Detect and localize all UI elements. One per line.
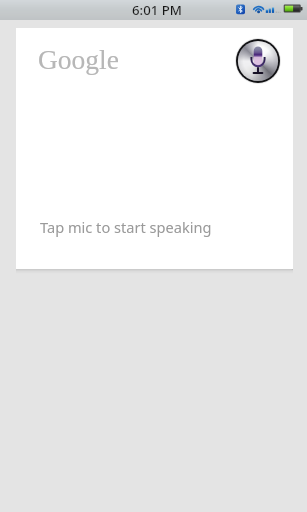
button[interactable]: Tap microphone to start speaking — [235, 38, 281, 84]
staticText: Tap mic to start speaking — [40, 217, 212, 237]
staticText: Google — [38, 44, 119, 74]
staticText: 6:01 PM — [132, 1, 182, 19]
